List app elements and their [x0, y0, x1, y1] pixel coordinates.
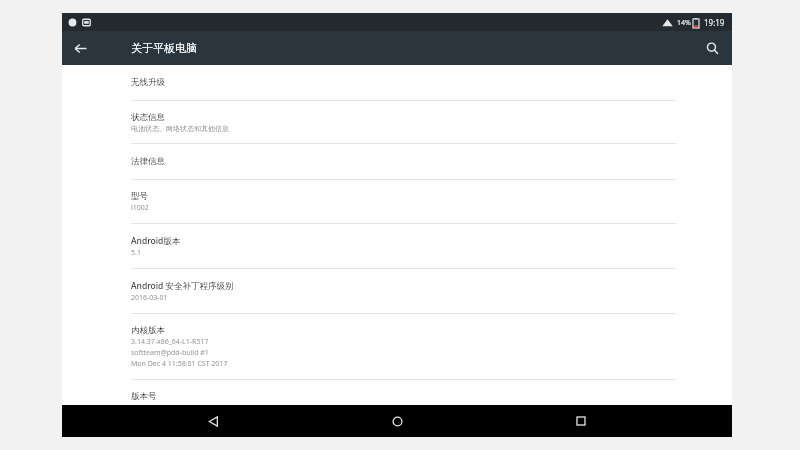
- staticText: 14%: [677, 18, 691, 28]
- button[interactable]: 法律信息: [62, 144, 732, 180]
- button[interactable]: Android 安全补丁程序级别: [62, 269, 732, 314]
- button[interactable]: 内核版本: [62, 314, 732, 380]
- staticText: 内核版本: [131, 325, 165, 336]
- button[interactable]: 版本号: [62, 380, 732, 405]
- staticText: 版本号: [131, 391, 157, 402]
- button[interactable]: 无线升级: [62, 65, 732, 101]
- button[interactable]: Back: [194, 405, 232, 437]
- staticText: 5.1: [131, 248, 141, 258]
- button[interactable]: Android版本: [62, 224, 732, 269]
- staticText: 状态信息: [131, 112, 165, 123]
- staticText: 2016-03-01: [131, 293, 168, 303]
- staticText: softteam@pdd-build #1: [131, 348, 209, 358]
- staticText: Android版本: [131, 235, 181, 247]
- button[interactable]: Home: [378, 405, 416, 437]
- staticText: 法律信息: [131, 156, 165, 167]
- staticText: 型号: [131, 191, 148, 202]
- staticText: 无线升级: [131, 77, 165, 88]
- staticText: Android 安全补丁程序级别: [131, 280, 234, 292]
- button[interactable]: 型号: [62, 180, 732, 224]
- button[interactable]: Recent apps: [562, 405, 600, 437]
- button[interactable]: Search: [698, 34, 726, 62]
- staticText: 关于平板电脑: [131, 41, 197, 55]
- staticText: i1002: [131, 203, 149, 213]
- button[interactable]: 状态信息: [62, 101, 732, 144]
- staticText: 3.14.37-x86_64-L1-R517: [131, 337, 209, 347]
- staticText: Mon Dec 4 11:58:01 CST 2017: [131, 359, 228, 369]
- staticText: 电池状态、网络状态和其他信息: [131, 124, 229, 133]
- button[interactable]: Back: [66, 34, 94, 62]
- staticText: 19:19: [704, 17, 725, 28]
